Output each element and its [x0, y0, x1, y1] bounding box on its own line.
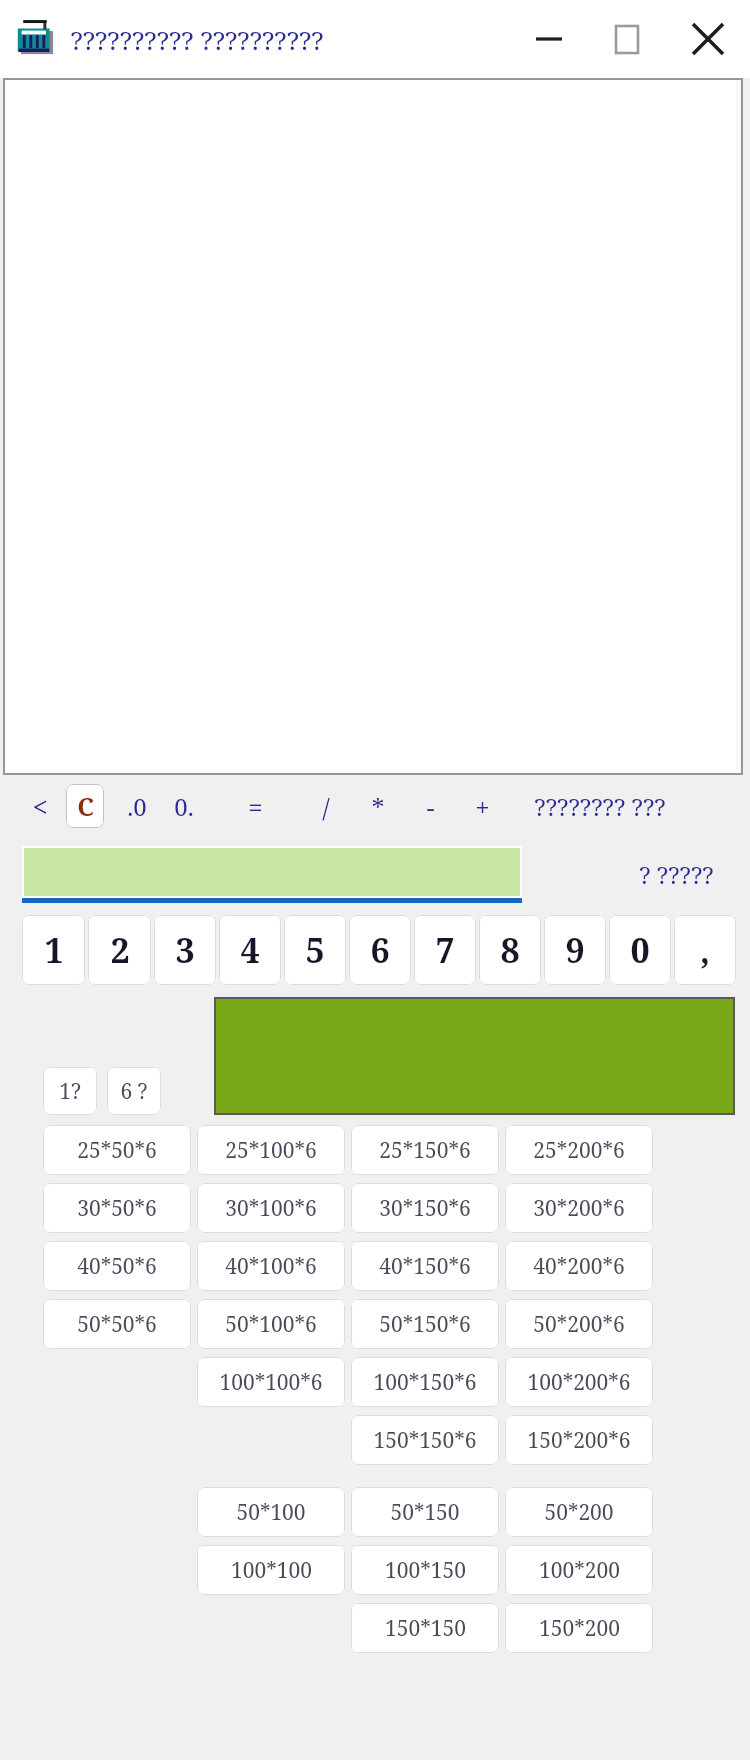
button[interactable]: 1: [22, 915, 85, 985]
button[interactable]: 40*50*6: [43, 1241, 191, 1291]
button[interactable]: 30*100*6: [197, 1183, 345, 1233]
staticText: 50*100*6: [225, 1310, 317, 1339]
button[interactable]: 100*200: [505, 1545, 653, 1595]
staticText: 2: [110, 927, 130, 973]
staticText: +: [475, 789, 490, 824]
button[interactable]: 1?: [43, 1067, 97, 1115]
staticText: 25*200*6: [533, 1136, 625, 1165]
button[interactable]: 30*150*6: [351, 1183, 499, 1233]
staticText: 150*200*6: [527, 1426, 631, 1455]
staticText: 50*200: [544, 1498, 614, 1527]
button[interactable]: 50*150*6: [351, 1299, 499, 1349]
button[interactable]: 30*50*6: [43, 1183, 191, 1233]
staticText: C: [77, 789, 94, 823]
staticText: 4: [240, 927, 260, 973]
staticText: ? ?????: [639, 858, 714, 891]
button[interactable]: 25*50*6: [43, 1125, 191, 1175]
staticText: 50*50*6: [77, 1310, 157, 1339]
button[interactable]: 100*150*6: [351, 1357, 499, 1407]
staticText: 100*150: [385, 1556, 466, 1585]
button[interactable]: 50*50*6: [43, 1299, 191, 1349]
staticText: 30*50*6: [77, 1194, 157, 1223]
staticText: ???????? ???: [534, 790, 666, 823]
staticText: 25*150*6: [379, 1136, 471, 1165]
button[interactable]: 100*100*6: [197, 1357, 345, 1407]
staticText: /: [322, 789, 330, 824]
staticText: 8: [500, 927, 520, 973]
button[interactable]: Back: [22, 781, 58, 831]
button[interactable]: 5: [284, 915, 346, 985]
staticText: <: [32, 787, 48, 825]
staticText: 0.: [174, 790, 194, 823]
button[interactable]: 8: [479, 915, 541, 985]
button[interactable]: 50*200*6: [505, 1299, 653, 1349]
button[interactable]: 100*100: [197, 1545, 345, 1595]
button[interactable]: 7: [414, 915, 476, 985]
button[interactable]: 40*200*6: [505, 1241, 653, 1291]
button[interactable]: 150*200: [505, 1603, 653, 1653]
button[interactable]: 100*200*6: [505, 1357, 653, 1407]
staticText: 150*200: [539, 1614, 620, 1643]
staticText: 25*50*6: [77, 1136, 157, 1165]
staticText: .0: [127, 790, 147, 823]
staticText: 0: [630, 927, 650, 973]
staticText: ,: [700, 927, 710, 973]
button[interactable]: 150*200*6: [505, 1415, 653, 1465]
button[interactable]: 0.: [160, 781, 208, 831]
button[interactable]: 150*150: [351, 1603, 499, 1653]
button[interactable]: ,: [674, 915, 736, 985]
staticText: 50*150*6: [379, 1310, 471, 1339]
button[interactable]: 30*200*6: [505, 1183, 653, 1233]
staticText: ?????????? ??????????: [70, 22, 324, 57]
button[interactable]: /: [306, 781, 346, 831]
button[interactable]: 100*150: [351, 1545, 499, 1595]
button[interactable]: [22, 846, 522, 903]
button[interactable]: Minimize: [510, 0, 588, 78]
staticText: 30*200*6: [533, 1194, 625, 1223]
staticText: 50*100: [236, 1498, 306, 1527]
button[interactable]: 25*150*6: [351, 1125, 499, 1175]
button[interactable]: 40*150*6: [351, 1241, 499, 1291]
staticText: 30*150*6: [379, 1194, 471, 1223]
button[interactable]: .0: [114, 781, 160, 831]
button[interactable]: 150*150*6: [351, 1415, 499, 1465]
button[interactable]: ? ?????: [639, 858, 714, 891]
staticText: 3: [175, 927, 195, 973]
staticText: 100*200: [539, 1556, 620, 1585]
button[interactable]: 9: [544, 915, 606, 985]
staticText: 30*100*6: [225, 1194, 317, 1223]
button[interactable]: 50*200: [505, 1487, 653, 1537]
staticText: 150*150: [385, 1614, 466, 1643]
button[interactable]: 6: [349, 915, 411, 985]
button[interactable]: 0: [609, 915, 671, 985]
button[interactable]: 2: [88, 915, 151, 985]
button[interactable]: 40*100*6: [197, 1241, 345, 1291]
button[interactable]: =: [232, 781, 278, 831]
button[interactable]: ???????? ???: [534, 781, 666, 831]
button[interactable]: *: [358, 781, 398, 831]
button[interactable]: C: [66, 784, 104, 828]
staticText: 100*200*6: [527, 1368, 631, 1397]
staticText: 40*100*6: [225, 1252, 317, 1281]
staticText: 7: [435, 927, 455, 973]
button[interactable]: +: [462, 781, 502, 831]
staticText: 100*100*6: [219, 1368, 323, 1397]
button[interactable]: Close: [666, 0, 750, 78]
button[interactable]: 25*100*6: [197, 1125, 345, 1175]
button[interactable]: 6 ?: [107, 1067, 161, 1115]
button[interactable]: 50*100*6: [197, 1299, 345, 1349]
button[interactable]: 4: [219, 915, 281, 985]
button[interactable]: 25*200*6: [505, 1125, 653, 1175]
staticText: 25*100*6: [225, 1136, 317, 1165]
button[interactable]: 3: [154, 915, 216, 985]
button[interactable]: Maximize: [588, 0, 666, 78]
button[interactable]: -: [410, 781, 450, 831]
staticText: =: [248, 789, 263, 824]
button[interactable]: 50*100: [197, 1487, 345, 1537]
staticText: -: [426, 789, 435, 824]
button[interactable]: 50*150: [351, 1487, 499, 1537]
staticText: 40*200*6: [533, 1252, 625, 1281]
staticText: *: [371, 789, 385, 824]
staticText: 1: [44, 927, 64, 973]
